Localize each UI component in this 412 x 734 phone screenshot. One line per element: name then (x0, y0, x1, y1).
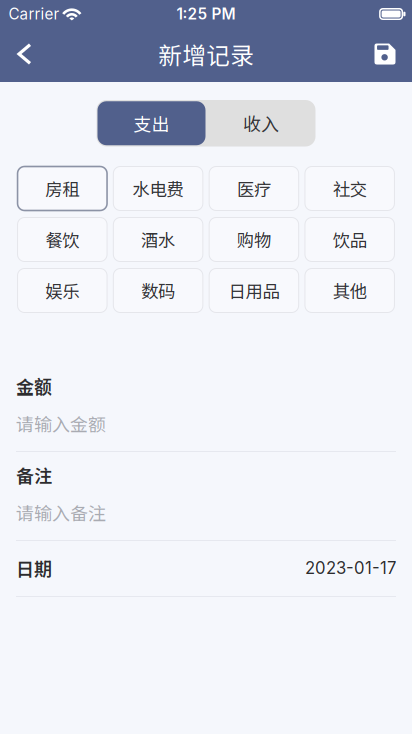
staticText: 房租 (45, 176, 79, 201)
staticText: 请输入金额 (16, 410, 106, 437)
button[interactable]: 金额 (16, 373, 396, 452)
button[interactable]: 社交 (305, 166, 394, 210)
button[interactable]: 收入 (206, 100, 315, 146)
button[interactable]: 备注 (16, 462, 396, 541)
staticText: 医疗 (237, 176, 271, 201)
staticText: 日期 (16, 555, 52, 581)
staticText: 2023-01-17 (305, 558, 396, 578)
button[interactable]: 购物 (209, 217, 299, 261)
staticText: 社交 (333, 176, 367, 201)
staticText: 备注 (16, 462, 52, 488)
button[interactable]: 日期 (16, 555, 396, 597)
staticText: 数码 (141, 278, 175, 303)
button[interactable]: 支出 (96, 100, 206, 146)
button[interactable]: 其他 (305, 268, 394, 312)
staticText: 金额 (16, 373, 52, 399)
staticText: 娱乐 (45, 278, 79, 303)
staticText: 收入 (243, 110, 279, 136)
staticText: 其他 (333, 278, 367, 303)
staticText: 新增记录 (158, 37, 254, 71)
staticText: 水电费 (133, 176, 184, 201)
button[interactable]: 房租 (18, 166, 107, 210)
button[interactable]: 酒水 (113, 217, 203, 261)
button[interactable]: 饮品 (305, 217, 394, 261)
button[interactable]: 日用品 (209, 268, 299, 312)
button[interactable]: Back (0, 29, 48, 79)
staticText: 餐饮 (45, 227, 79, 252)
button[interactable]: Save (364, 29, 406, 79)
button[interactable]: 医疗 (209, 166, 299, 210)
staticText: 支出 (133, 110, 169, 136)
button[interactable]: 餐饮 (18, 217, 107, 261)
button[interactable]: 水电费 (113, 166, 203, 210)
staticText: Carrier (8, 5, 59, 23)
staticText: 1:25 PM (176, 5, 235, 23)
staticText: 酒水 (141, 227, 175, 252)
staticText: 日用品 (228, 278, 279, 303)
staticText: 请输入备注 (16, 499, 106, 526)
button[interactable]: 娱乐 (18, 268, 107, 312)
button[interactable]: 数码 (113, 268, 203, 312)
staticText: 购物 (237, 227, 271, 252)
staticText: 饮品 (333, 227, 367, 252)
